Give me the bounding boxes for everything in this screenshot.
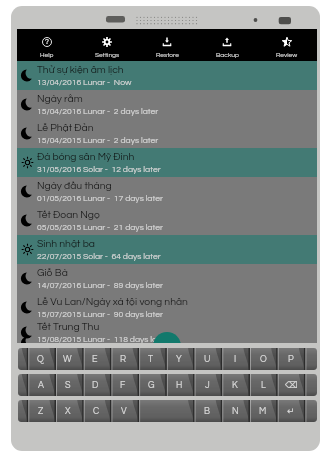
staticText: 31/05/2016 Solar - 12 days later [37, 165, 161, 174]
button[interactable]: Tết Trung Thu [17, 322, 317, 343]
staticText: 14/07/2016 Lunar - 89 days later [37, 281, 163, 290]
staticText: Lễ Phật Đản [37, 123, 94, 134]
staticText: ? [45, 38, 49, 46]
staticText: I [234, 355, 237, 364]
staticText: Review [276, 52, 298, 59]
staticText: ⌫ [285, 380, 298, 390]
button[interactable]: Z [27, 400, 54, 422]
button[interactable]: Review [257, 29, 317, 61]
staticText: 15/04/2015 Lunar - 2 days later [37, 136, 159, 145]
staticText: 01/05/2016 Lunar - 17 days later [37, 194, 163, 203]
button[interactable]: E [81, 348, 109, 370]
button[interactable]: Giỗ Bà [17, 264, 317, 293]
button[interactable]: S [54, 374, 81, 396]
staticText: H [176, 381, 183, 390]
button[interactable]: Settings [77, 29, 137, 61]
button[interactable]: O [249, 348, 277, 370]
staticText: A [38, 381, 44, 390]
button[interactable]: Add event [153, 332, 181, 343]
staticText: C [93, 407, 100, 416]
staticText: Backup [216, 52, 239, 59]
staticText: Lễ Vu Lan/Ngày xá tội vong nhân [37, 297, 188, 308]
staticText: 15/08/2015 Lunar - 118 days later [37, 335, 168, 343]
button[interactable]: Space [138, 400, 193, 422]
staticText: ↵ [287, 406, 295, 416]
button[interactable]: Space [18, 348, 27, 370]
staticText: U [204, 355, 211, 364]
button[interactable]: Sinh nhật ba [17, 235, 317, 264]
button[interactable]: Space [305, 348, 317, 370]
staticText: Giỗ Bà [37, 268, 68, 279]
staticText: Ngày đầu tháng [37, 181, 112, 192]
staticText: V [121, 407, 127, 416]
button[interactable]: Restore [137, 29, 197, 61]
button[interactable]: X [54, 400, 82, 422]
button[interactable]: Space [18, 374, 27, 396]
staticText: L [261, 381, 266, 390]
staticText: Tết Đoan Ngọ [37, 210, 100, 221]
staticText: Sinh nhật ba [37, 239, 95, 250]
staticText: Đá bóng sân Mỹ Đình [37, 152, 135, 163]
button[interactable]: Lễ Vu Lan/Ngày xá tội vong nhân [17, 293, 317, 322]
button[interactable]: Backup [197, 29, 257, 61]
button[interactable]: Q [27, 348, 54, 370]
staticText: 15/07/2015 Lunar - 90 days later [37, 310, 163, 319]
staticText: Y [176, 355, 182, 364]
staticText: N [232, 407, 239, 416]
button[interactable]: V [110, 400, 138, 422]
staticText: 05/05/2015 Lunar - 21 days later [37, 223, 163, 232]
staticText: K [232, 381, 238, 390]
staticText: J [205, 381, 210, 390]
button[interactable]: ? [17, 29, 77, 61]
button[interactable]: K [221, 374, 249, 396]
button[interactable]: Space [305, 400, 317, 422]
staticText: X [65, 407, 71, 416]
button[interactable]: I [221, 348, 249, 370]
staticText: Tết Trung Thu [37, 322, 100, 333]
staticText: Restore [156, 52, 179, 59]
button[interactable]: P [277, 348, 305, 370]
button[interactable]: Đá bóng sân Mỹ Đình [17, 148, 317, 177]
button[interactable]: R [109, 348, 137, 370]
button[interactable]: B [193, 400, 221, 422]
staticText: F [120, 381, 126, 390]
staticText: P [288, 355, 294, 364]
button[interactable]: ↵ [277, 400, 305, 422]
staticText: W [63, 355, 72, 364]
staticText: G [148, 381, 155, 390]
button[interactable]: H [165, 374, 193, 396]
button[interactable]: W [54, 348, 81, 370]
staticText: M [259, 407, 267, 416]
staticText: Z [38, 407, 44, 416]
button[interactable]: U [193, 348, 221, 370]
button[interactable]: T [137, 348, 165, 370]
staticText: E [92, 355, 98, 364]
button[interactable]: Thử sự kiện âm lịch [17, 61, 317, 90]
button[interactable]: Ngày rằm [17, 90, 317, 119]
button[interactable]: J [193, 374, 221, 396]
staticText: Thử sự kiện âm lịch [37, 65, 124, 76]
staticText: T [148, 355, 154, 364]
button[interactable]: M [249, 400, 277, 422]
button[interactable]: ⌫ [277, 374, 305, 396]
button[interactable]: D [81, 374, 109, 396]
button[interactable]: Space [18, 400, 27, 422]
button[interactable]: A [27, 374, 54, 396]
button[interactable]: Y [165, 348, 193, 370]
button[interactable]: C [82, 400, 110, 422]
staticText: Settings [95, 52, 120, 59]
button[interactable]: Ngày đầu tháng [17, 177, 317, 206]
button[interactable]: Space [305, 374, 317, 396]
staticText: S [65, 381, 71, 390]
staticText: Ngày rằm [37, 94, 83, 105]
button[interactable]: N [221, 400, 249, 422]
button[interactable]: L [249, 374, 277, 396]
button[interactable]: G [137, 374, 165, 396]
button[interactable]: Lễ Phật Đản [17, 119, 317, 148]
staticText: Help [40, 52, 54, 59]
button[interactable]: F [109, 374, 137, 396]
staticText: Q [37, 355, 44, 364]
staticText: O [260, 355, 267, 364]
staticText: D [92, 381, 99, 390]
button[interactable]: Tết Đoan Ngọ [17, 206, 317, 235]
